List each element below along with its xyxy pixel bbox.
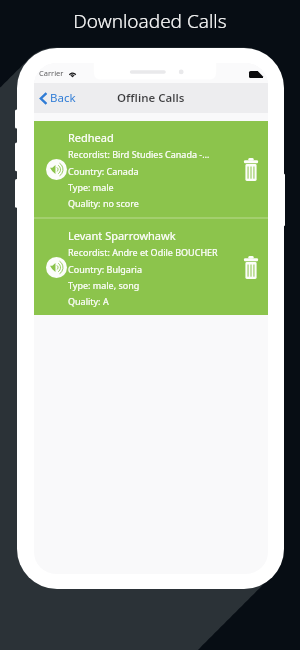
button[interactable]: Play recording: [34, 219, 268, 315]
button[interactable]: Play recording: [34, 121, 268, 217]
staticText: Type: male: [68, 181, 114, 193]
staticText: Country: Canada: [68, 165, 139, 177]
button[interactable]: Delete recording: [238, 250, 264, 284]
button[interactable]: Delete recording: [238, 152, 264, 186]
staticText: Quality: A: [68, 295, 109, 307]
staticText: Offline Calls: [117, 90, 185, 106]
staticText: Levant Sparrowhawk: [68, 228, 176, 243]
staticText: Quality: no score: [68, 197, 139, 209]
button[interactable]: Back: [38, 87, 78, 109]
staticText: Type: male, song: [68, 279, 140, 291]
staticText: Redhead: [68, 130, 114, 145]
staticText: Recordist: Andre et Odile BOUCHER: [68, 246, 218, 258]
staticText: Back: [50, 90, 76, 106]
button[interactable]: Play recording: [46, 159, 67, 180]
staticText: Country: Bulgaria: [68, 263, 142, 275]
staticText: Recordist: Bird Studies Canada -…: [68, 148, 210, 160]
button[interactable]: Play recording: [46, 257, 67, 278]
staticText: Carrier: [39, 68, 64, 78]
staticText: Downloaded Calls: [0, 8, 300, 34]
